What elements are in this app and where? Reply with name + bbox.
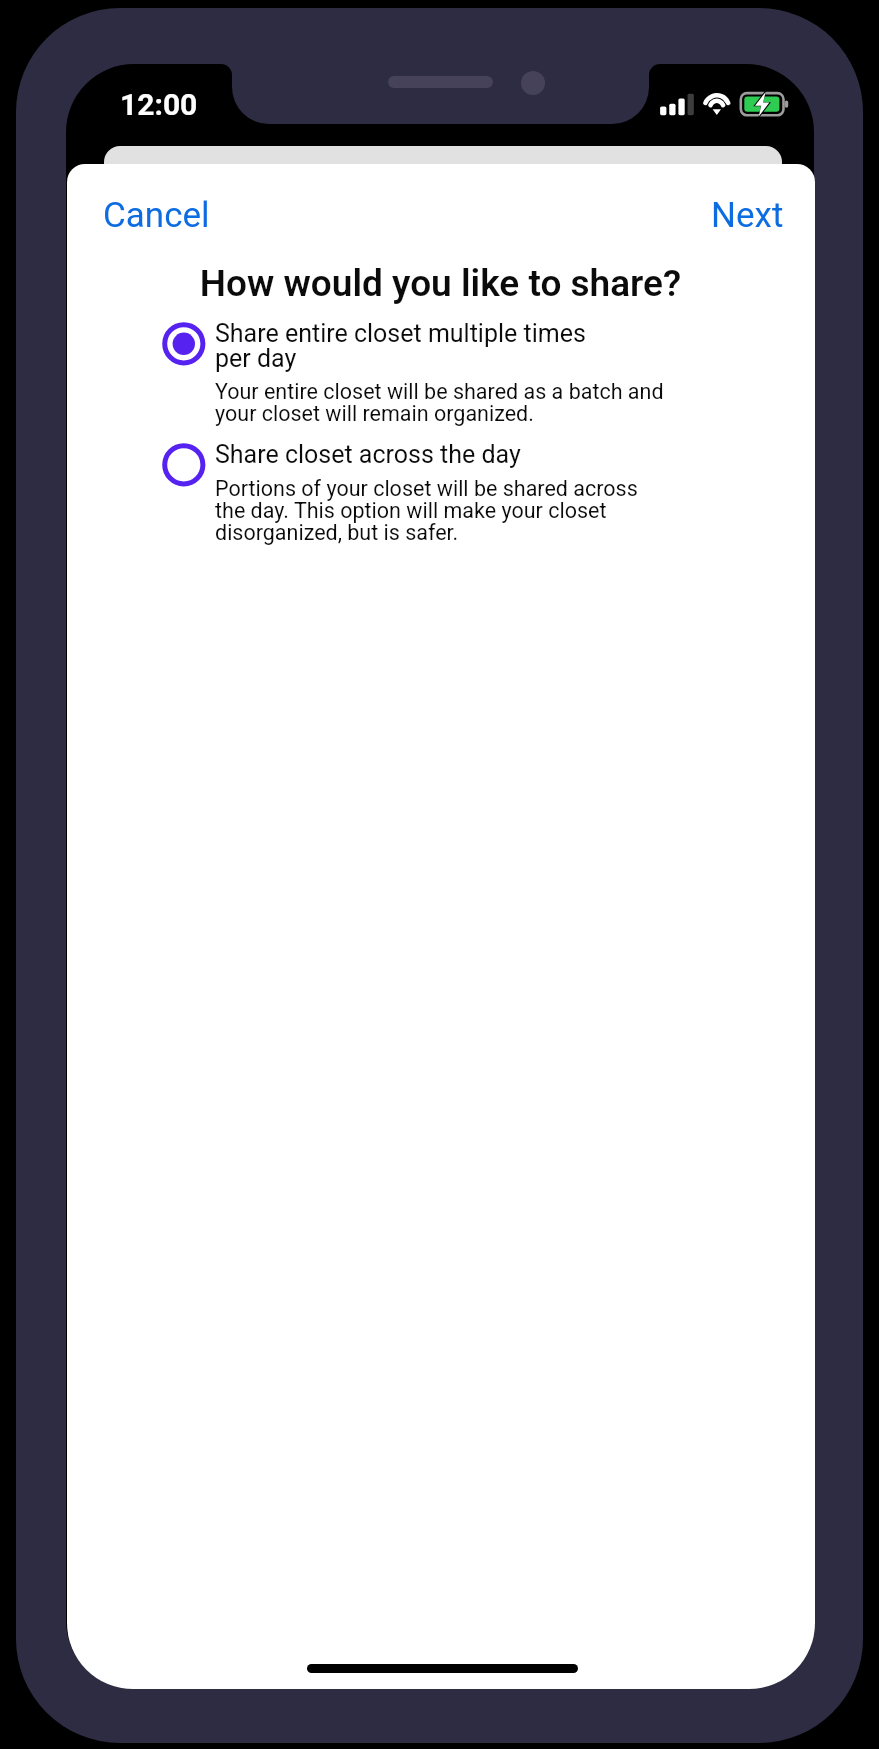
- button[interactable]: Share closet across the day: [155, 435, 700, 550]
- other: Battery charging: [736, 88, 794, 120]
- staticText: Portions of your closet will be shared a…: [215, 476, 638, 501]
- staticText: your closet will remain organized.: [215, 401, 534, 426]
- staticText: disorganized, but is safer.: [215, 520, 459, 545]
- staticText: Cancel: [103, 195, 210, 236]
- button[interactable]: Cancel: [82, 186, 230, 244]
- staticText: Your entire closet will be shared as a b…: [215, 379, 664, 404]
- staticText: Share entire closet multiple times: [215, 319, 586, 348]
- staticText: per day: [215, 344, 297, 373]
- other: Signal and Wi-Fi status: [655, 86, 735, 120]
- staticText: Next: [711, 195, 784, 236]
- staticText: How would you like to share?: [67, 262, 814, 305]
- button[interactable]: Share entire closet multiple times: [155, 314, 700, 426]
- staticText: Share closet across the day: [215, 440, 521, 469]
- button[interactable]: Next: [694, 186, 800, 244]
- staticText: the day. This option will make your clos…: [215, 498, 607, 523]
- staticText: 12:00: [120, 87, 198, 122]
